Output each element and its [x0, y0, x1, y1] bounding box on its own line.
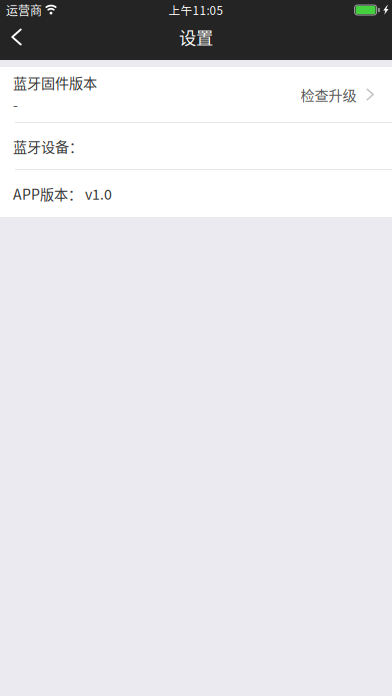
staticText: 蓝牙固件版本 — [13, 72, 97, 92]
staticText: 运营商 — [6, 1, 42, 19]
button[interactable]: 蓝牙固件版本 — [0, 67, 392, 122]
staticText: 设置 — [179, 24, 213, 50]
staticText: APP版本： v1.0 — [13, 183, 112, 204]
staticText: 上午11:05 — [168, 1, 223, 18]
staticText: - — [13, 93, 18, 114]
staticText: 检查升级 — [300, 84, 356, 105]
staticText: 蓝牙设备： — [13, 136, 83, 156]
button[interactable]: Back — [0, 21, 33, 59]
